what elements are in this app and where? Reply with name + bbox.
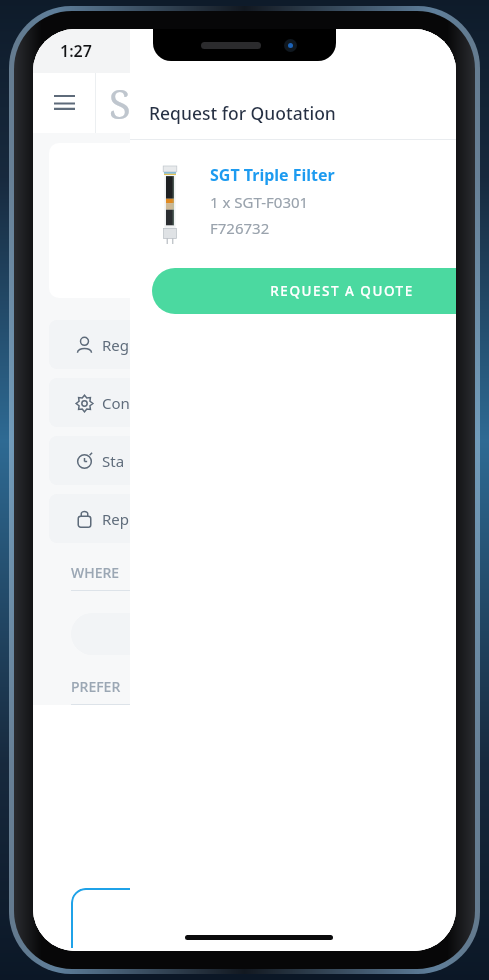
staticText: PREFER (71, 677, 121, 696)
staticText: WHERE (71, 563, 120, 582)
button[interactable]: REQUEST A QUOTE (152, 268, 456, 314)
button[interactable]: Sta (49, 436, 143, 485)
staticText: Request for Quotation (149, 101, 336, 125)
staticText: 1:27 (60, 40, 92, 62)
staticText: F726732 (210, 218, 270, 238)
staticText: S (109, 76, 131, 130)
staticText: REQUEST A QUOTE (270, 282, 414, 300)
button[interactable]: Rep (49, 494, 143, 543)
staticText: Sta (102, 451, 125, 471)
button[interactable]: Menu (33, 73, 95, 133)
staticText: SGT Triple Filter (210, 164, 335, 186)
button[interactable] (71, 613, 143, 655)
button[interactable]: Con (49, 378, 143, 427)
staticText: Con (102, 393, 130, 413)
button[interactable]: Reg (49, 320, 143, 369)
staticText: 1 x SGT-F0301 (210, 192, 309, 212)
staticText: Rep (102, 509, 130, 529)
staticText: Reg (102, 335, 130, 355)
